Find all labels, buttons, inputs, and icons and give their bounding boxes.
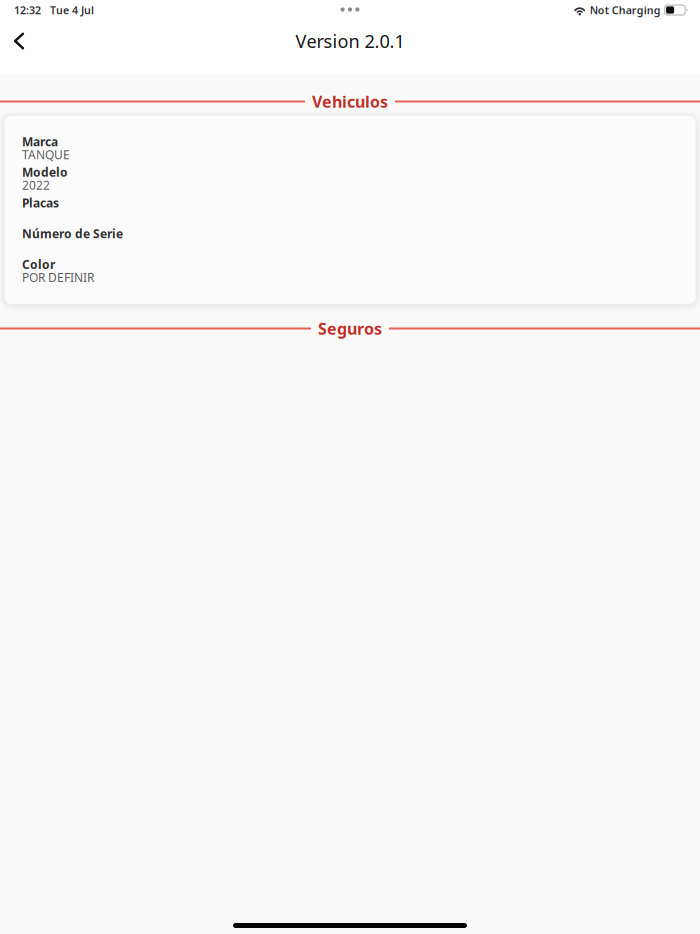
staticText: Tue 4 Jul: [41, 3, 94, 17]
staticText: 12:32: [14, 3, 41, 17]
staticText: Placas: [22, 195, 59, 211]
staticText: Version 2.0.1: [295, 29, 404, 53]
staticText: Marca: [22, 133, 58, 149]
staticText: Modelo: [22, 164, 68, 180]
staticText: Color: [22, 256, 55, 272]
staticText: Vehiculos: [312, 91, 388, 112]
staticText: Número de Serie: [22, 226, 123, 241]
staticText: POR DEFINIR: [22, 269, 94, 285]
staticText: 2022: [22, 177, 50, 193]
button[interactable]: Back: [0, 25, 41, 56]
staticText: Seguros: [318, 318, 382, 339]
staticText: Not Charging: [590, 3, 661, 17]
staticText: TANQUE: [22, 146, 70, 162]
